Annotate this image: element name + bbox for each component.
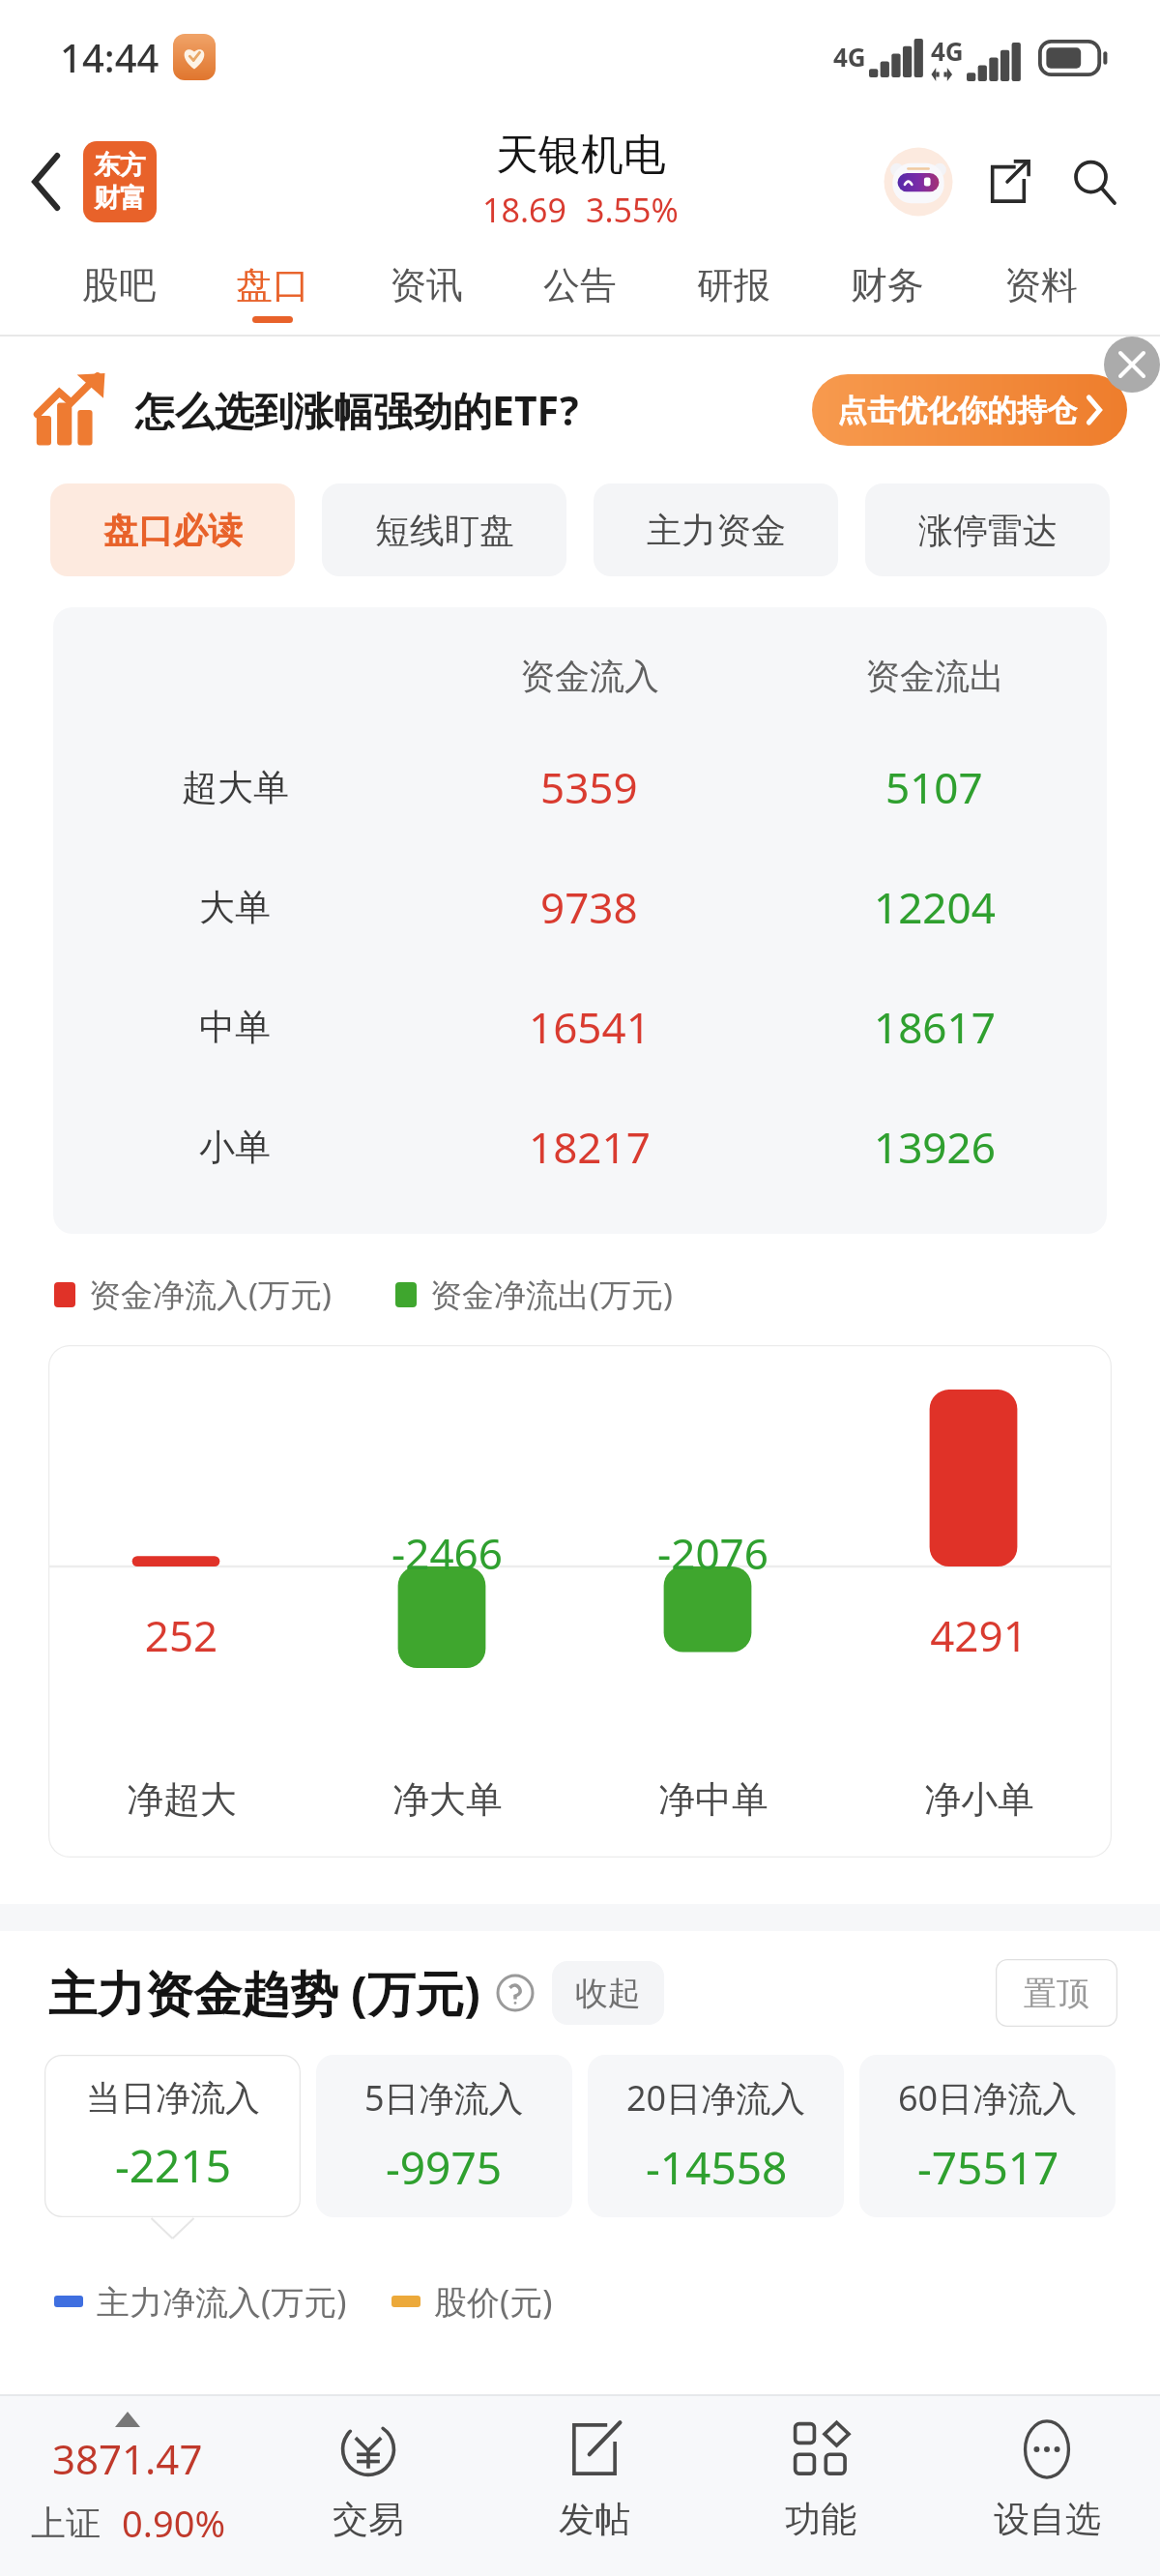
staticText: 资金流出 (865, 655, 1004, 698)
button[interactable]: East Money (83, 141, 157, 222)
staticText: 盘口必读 (103, 509, 243, 552)
staticText: 净中单 (658, 1776, 768, 1823)
staticText: 公告 (543, 262, 617, 308)
button[interactable]: 中单 (53, 967, 1107, 1087)
staticText: -75517 (917, 2137, 1059, 2198)
button[interactable]: Back (10, 144, 85, 220)
button[interactable]: 超大单 (53, 727, 1107, 847)
button[interactable]: 财务 (810, 249, 964, 335)
button[interactable]: 功能 (708, 2396, 934, 2576)
staticText: 当日净流入 (86, 2076, 260, 2120)
staticText: 财务 (851, 262, 924, 308)
staticText: 18617 (874, 998, 996, 1056)
staticText: 5日净流入 (364, 2074, 524, 2122)
button[interactable]: 资料 (964, 249, 1117, 335)
button[interactable]: 置顶 (996, 1959, 1117, 2027)
staticText: 4G (833, 40, 866, 73)
staticText: 净大单 (392, 1776, 503, 1823)
staticText: -2215 (115, 2135, 232, 2196)
staticText: 20日净流入 (626, 2074, 806, 2122)
staticText: 资讯 (390, 262, 463, 308)
button[interactable]: 公告 (503, 249, 656, 335)
staticText: 股价(元) (434, 2279, 553, 2324)
staticText: 超大单 (182, 765, 289, 810)
button[interactable]: 20日净流入 (588, 2055, 844, 2217)
staticText: 18217 (529, 1118, 651, 1176)
staticText: 净超大 (127, 1776, 237, 1823)
button[interactable]: 研报 (656, 249, 810, 335)
staticText: 设自选 (994, 2497, 1101, 2542)
staticText: 5359 (540, 758, 638, 816)
staticText: 5107 (885, 758, 983, 816)
staticText: 13926 (874, 1118, 996, 1176)
staticText: 交易 (333, 2497, 404, 2542)
button[interactable]: 交易 (255, 2396, 481, 2576)
staticText: 252 (48, 1606, 314, 1664)
button[interactable]: 大单 (53, 847, 1107, 967)
button[interactable]: Close ad (1104, 337, 1160, 393)
staticText: 16541 (529, 998, 651, 1056)
staticText: 3.55% (586, 188, 679, 232)
staticText: 18.69 (482, 188, 566, 232)
staticText: 主力资金趋势 (万元) (48, 1960, 480, 2026)
staticText: 上证 (31, 2502, 101, 2545)
staticText: -2466 (314, 1524, 580, 1582)
staticText: 研报 (697, 262, 770, 308)
staticText: 怎么选到涨幅强劲的ETF? (135, 383, 579, 437)
button[interactable]: 发帖 (481, 2396, 708, 2576)
staticText: -14558 (646, 2137, 788, 2198)
staticText: 中单 (199, 1005, 271, 1050)
button[interactable]: Search (1056, 143, 1133, 220)
staticText: 功能 (785, 2497, 856, 2542)
button[interactable]: 当日净流入 (44, 2055, 301, 2217)
staticText: 12204 (874, 878, 996, 936)
staticText: 天银机电 (496, 129, 666, 182)
staticText: 短线盯盘 (375, 509, 514, 552)
button[interactable]: 涨停雷达 (865, 483, 1110, 576)
button[interactable]: 股吧 (43, 249, 195, 335)
staticText: 股吧 (82, 262, 156, 308)
staticText: 东方 (94, 149, 146, 182)
button[interactable]: 盘口 (195, 249, 349, 335)
staticText: -9975 (386, 2137, 503, 2198)
button[interactable]: 资讯 (349, 249, 503, 335)
staticText: 60日净流入 (898, 2074, 1078, 2122)
staticText: 主力资金 (647, 509, 786, 552)
staticText: 发帖 (559, 2497, 630, 2542)
staticText: 盘口 (236, 262, 309, 308)
staticText: -2076 (580, 1524, 846, 1582)
staticText: 财富 (94, 182, 146, 215)
staticText: 14:44 (60, 31, 159, 83)
button[interactable]: 点击优化你的持仓 (812, 374, 1127, 446)
button[interactable]: 5日净流入 (316, 2055, 572, 2217)
button[interactable]: Help (494, 1972, 536, 2014)
button[interactable]: AI assistant (878, 141, 959, 222)
button[interactable]: 主力资金 (594, 483, 838, 576)
staticText: 资料 (1004, 262, 1078, 308)
staticText: 资金净流出(万元) (430, 1273, 673, 1316)
staticText: 0.90% (122, 2498, 225, 2548)
button[interactable]: 设自选 (934, 2396, 1160, 2576)
staticText: 大单 (199, 885, 271, 930)
button[interactable]: 盘口必读 (50, 483, 295, 576)
staticText: 置顶 (1024, 1973, 1089, 2014)
staticText: 涨停雷达 (918, 509, 1058, 552)
staticText: 9738 (540, 878, 638, 936)
button[interactable]: 60日净流入 (859, 2055, 1116, 2217)
staticText: 3871.47 (52, 2431, 203, 2486)
staticText: 资金流入 (520, 655, 659, 698)
staticText: 主力净流入(万元) (97, 2279, 347, 2324)
staticText: 4291 (846, 1606, 1112, 1664)
button[interactable]: Share (971, 144, 1046, 220)
staticText: 净小单 (924, 1776, 1034, 1823)
staticText: 收起 (575, 1973, 641, 2014)
button[interactable]: 怎么选到涨幅强劲的ETF? (0, 337, 1160, 483)
button[interactable]: 3871.47 (0, 2396, 255, 2576)
button[interactable]: 收起 (552, 1961, 664, 2025)
staticText: 点击优化你的持仓 (837, 392, 1077, 429)
staticText: 资金净流入(万元) (89, 1273, 332, 1316)
button[interactable]: 短线盯盘 (322, 483, 566, 576)
staticText: 小单 (199, 1125, 271, 1170)
button[interactable]: 小单 (53, 1087, 1107, 1207)
staticText: 4G (931, 34, 964, 68)
